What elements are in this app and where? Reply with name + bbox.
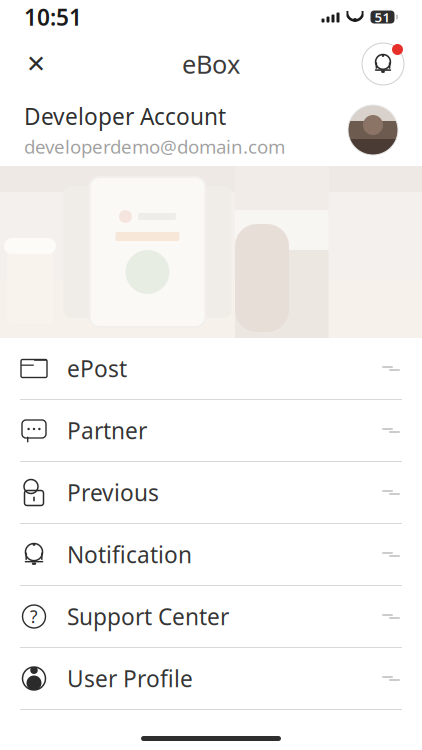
- button[interactable]: Notification: [0, 524, 422, 585]
- button[interactable]: ?: [0, 586, 422, 647]
- staticText: Developer Account: [24, 101, 226, 131]
- staticText: Previous: [67, 477, 159, 507]
- staticText: 51: [374, 8, 390, 26]
- button[interactable]: Close: [14, 42, 58, 86]
- button[interactable]: Partner: [0, 400, 422, 461]
- staticText: ?: [30, 605, 38, 628]
- button[interactable]: Notifications: [358, 39, 408, 89]
- button[interactable]: Previous: [0, 462, 422, 523]
- staticText: Partner: [67, 415, 147, 445]
- staticText: ePost: [67, 353, 127, 383]
- button[interactable]: User Profile: [0, 648, 422, 709]
- staticText: Notification: [67, 539, 192, 569]
- staticText: User Profile: [67, 663, 193, 693]
- staticText: 10:51: [24, 2, 82, 32]
- staticText: developerdemo@domain.com: [24, 134, 285, 159]
- staticText: eBox: [182, 47, 240, 81]
- staticText: ✕: [26, 50, 46, 78]
- button[interactable]: ePost: [0, 338, 422, 399]
- button[interactable]: Developer Account: [0, 94, 422, 166]
- staticText: Support Center: [67, 601, 229, 631]
